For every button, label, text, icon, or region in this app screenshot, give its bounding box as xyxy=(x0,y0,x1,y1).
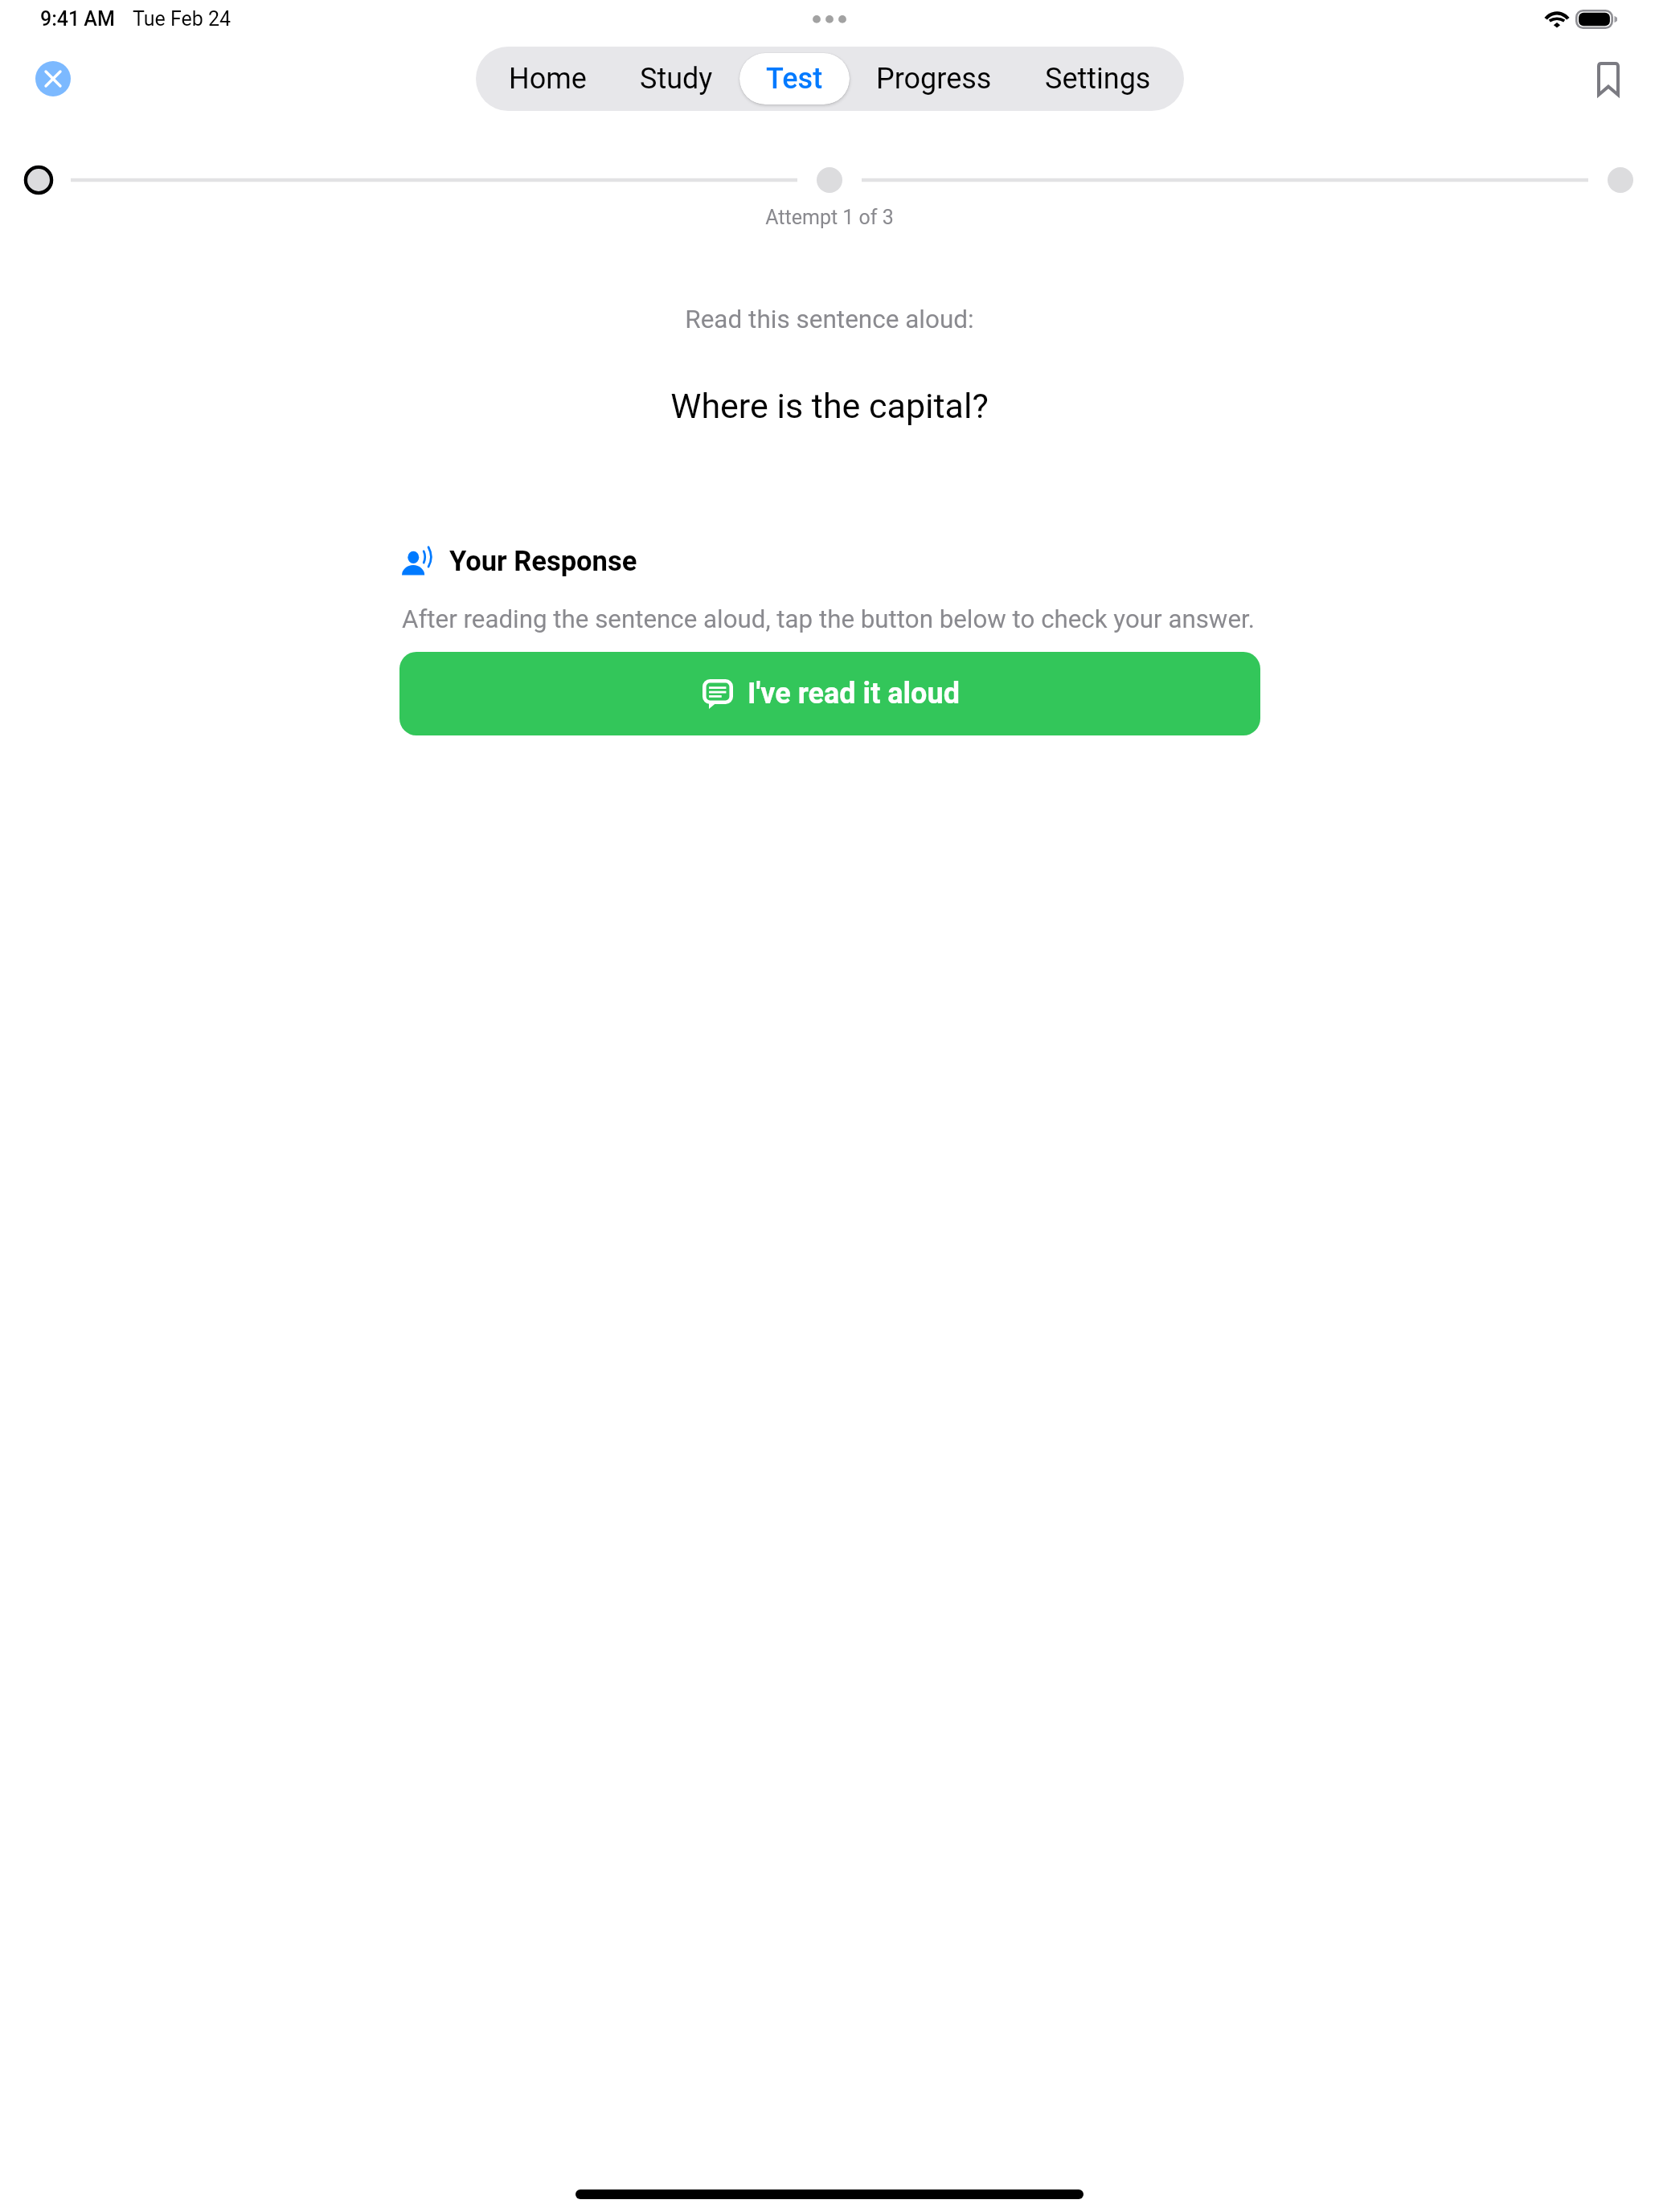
staticText: Tue Feb 24 xyxy=(133,7,231,31)
staticText: 9:41 AM xyxy=(40,7,115,31)
staticText: Progress xyxy=(876,62,992,96)
button[interactable]: Bookmark xyxy=(1586,56,1631,101)
button[interactable]: Settings xyxy=(1018,53,1178,104)
staticText: Test xyxy=(766,62,823,96)
staticText: Read this sentence aloud: xyxy=(0,305,1659,334)
staticText: Your Response xyxy=(449,545,637,577)
staticText: Attempt 1 of 3 xyxy=(0,206,1659,229)
staticText: I've read it aloud xyxy=(748,677,960,711)
button[interactable]: Study xyxy=(613,53,739,104)
staticText: Settings xyxy=(1045,62,1151,96)
staticText: Where is the capital? xyxy=(0,386,1659,426)
staticText: Study xyxy=(640,62,713,96)
button[interactable]: I've read it aloud xyxy=(399,652,1260,735)
button[interactable]: Progress xyxy=(850,53,1018,104)
staticText: After reading the sentence aloud, tap th… xyxy=(402,604,1255,634)
button[interactable]: Close xyxy=(35,61,71,96)
button[interactable]: Test xyxy=(739,53,850,104)
button[interactable]: Home xyxy=(482,53,613,104)
staticText: Home xyxy=(509,62,587,96)
